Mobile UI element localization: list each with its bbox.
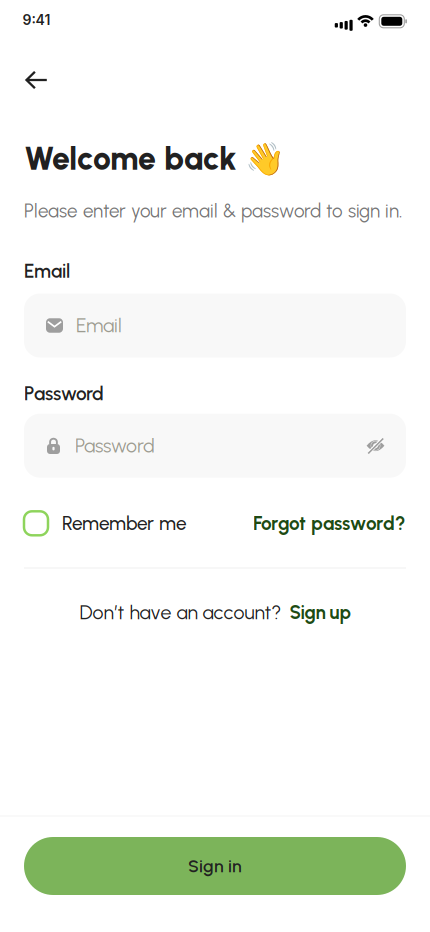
staticText: Password	[24, 382, 104, 405]
secureTextField[interactable]: Password	[75, 434, 351, 457]
button[interactable]: Sign in	[24, 837, 406, 895]
staticText: Email	[24, 260, 70, 282]
staticText: Email	[76, 314, 122, 337]
textField[interactable]: Email	[76, 314, 386, 337]
button[interactable]: Show password	[366, 438, 385, 454]
staticText: Remember me	[62, 512, 187, 535]
button[interactable]: Back	[19, 65, 53, 95]
staticText: Forgot password?	[253, 512, 406, 535]
staticText: Password	[75, 434, 155, 457]
staticText: Sign in	[188, 855, 242, 876]
staticText: Sign up	[289, 601, 350, 624]
staticText: Welcome back 👋	[24, 139, 285, 178]
staticText: Don’t have an account?	[79, 601, 281, 624]
staticText: 9:41	[22, 11, 50, 28]
button[interactable]: Remember me	[24, 511, 187, 535]
button[interactable]: Sign up	[289, 601, 350, 624]
button[interactable]: Forgot password?	[253, 512, 406, 535]
staticText: Please enter your email & password to si…	[24, 200, 402, 222]
